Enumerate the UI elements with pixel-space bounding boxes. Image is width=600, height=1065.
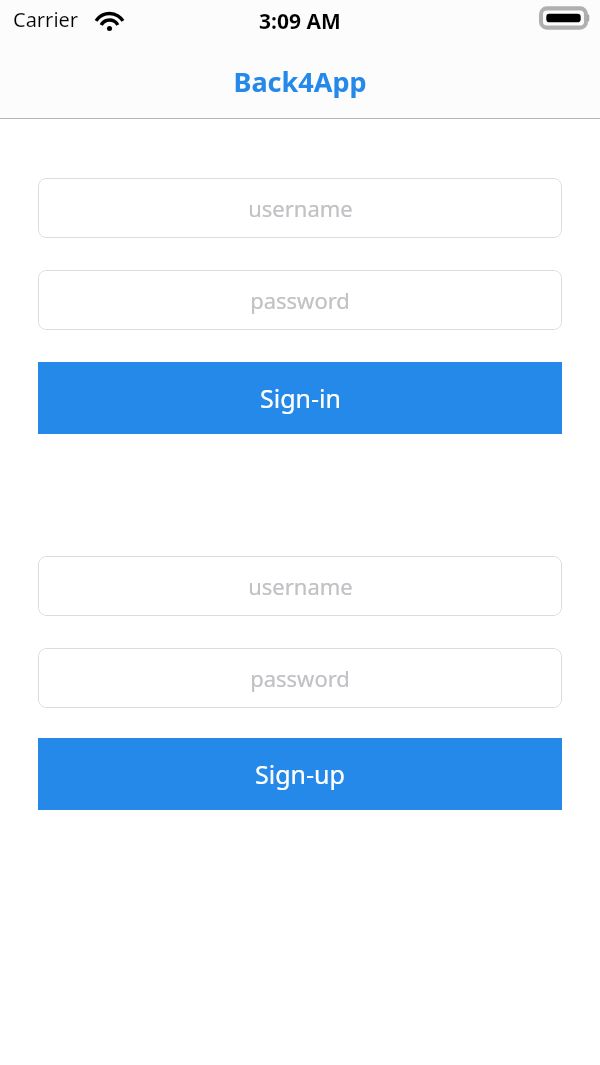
- staticText: Carrier: [13, 6, 79, 33]
- staticText: password: [250, 663, 350, 693]
- other: Wi-Fi signal: [93, 10, 126, 32]
- staticText: password: [250, 285, 350, 315]
- button[interactable]: Sign-up: [38, 738, 562, 810]
- other: Battery full: [541, 6, 591, 30]
- button[interactable]: password: [38, 648, 562, 708]
- staticText: username: [248, 193, 353, 223]
- button[interactable]: username: [38, 178, 562, 238]
- staticText: username: [248, 571, 353, 601]
- staticText: 3:09 AM: [259, 7, 341, 36]
- staticText: Sign-in: [260, 381, 341, 415]
- staticText: Back4App: [233, 63, 367, 100]
- button[interactable]: username: [38, 556, 562, 616]
- button[interactable]: Sign-in: [38, 362, 562, 434]
- button[interactable]: password: [38, 270, 562, 330]
- staticText: Sign-up: [255, 757, 345, 791]
